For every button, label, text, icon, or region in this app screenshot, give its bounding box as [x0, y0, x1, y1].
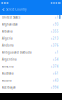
- button[interactable]: Algeria: [0, 35, 62, 42]
- staticText: +376: [51, 44, 59, 47]
- staticText: +93: [53, 23, 59, 26]
- button[interactable]: Afghanistan: [0, 21, 62, 28]
- staticText: Australia: [2, 72, 13, 75]
- staticText: United States: [2, 16, 20, 19]
- staticText: Austria: [2, 79, 11, 82]
- button[interactable]: Armenia: [0, 63, 62, 70]
- button[interactable]: Australia: [0, 70, 62, 77]
- button[interactable]: Andorra: [0, 42, 62, 49]
- button[interactable]: Austria: [0, 77, 62, 84]
- staticText: Select Country: [6, 8, 26, 11]
- staticText: Andorra: [2, 44, 13, 47]
- staticText: +374: [51, 65, 59, 68]
- staticText: +1: [55, 16, 59, 19]
- button[interactable]: Azerbaijan: [0, 84, 62, 91]
- staticText: Albania: [2, 30, 12, 33]
- staticText: +355: [51, 30, 59, 33]
- button[interactable]: Antigua and Barbuda: [0, 49, 62, 56]
- staticText: Antigua and Barbuda: [2, 51, 31, 54]
- button[interactable]: Albania: [0, 28, 62, 35]
- staticText: Afghanistan: [2, 23, 18, 26]
- button[interactable]: United States: [0, 14, 62, 21]
- staticText: Algeria: [2, 37, 12, 40]
- staticText: +61: [53, 72, 59, 75]
- staticText: +54: [53, 58, 59, 61]
- staticText: +43: [53, 79, 59, 82]
- staticText: Azerbaijan: [2, 86, 16, 89]
- staticText: +994: [51, 86, 59, 89]
- button[interactable]: Back: [2, 8, 5, 11]
- staticText: +213: [51, 37, 59, 40]
- staticText: Armenia: [2, 65, 13, 68]
- button[interactable]: Argentina: [0, 56, 62, 63]
- staticText: +1: [55, 51, 59, 54]
- staticText: Argentina: [2, 58, 16, 61]
